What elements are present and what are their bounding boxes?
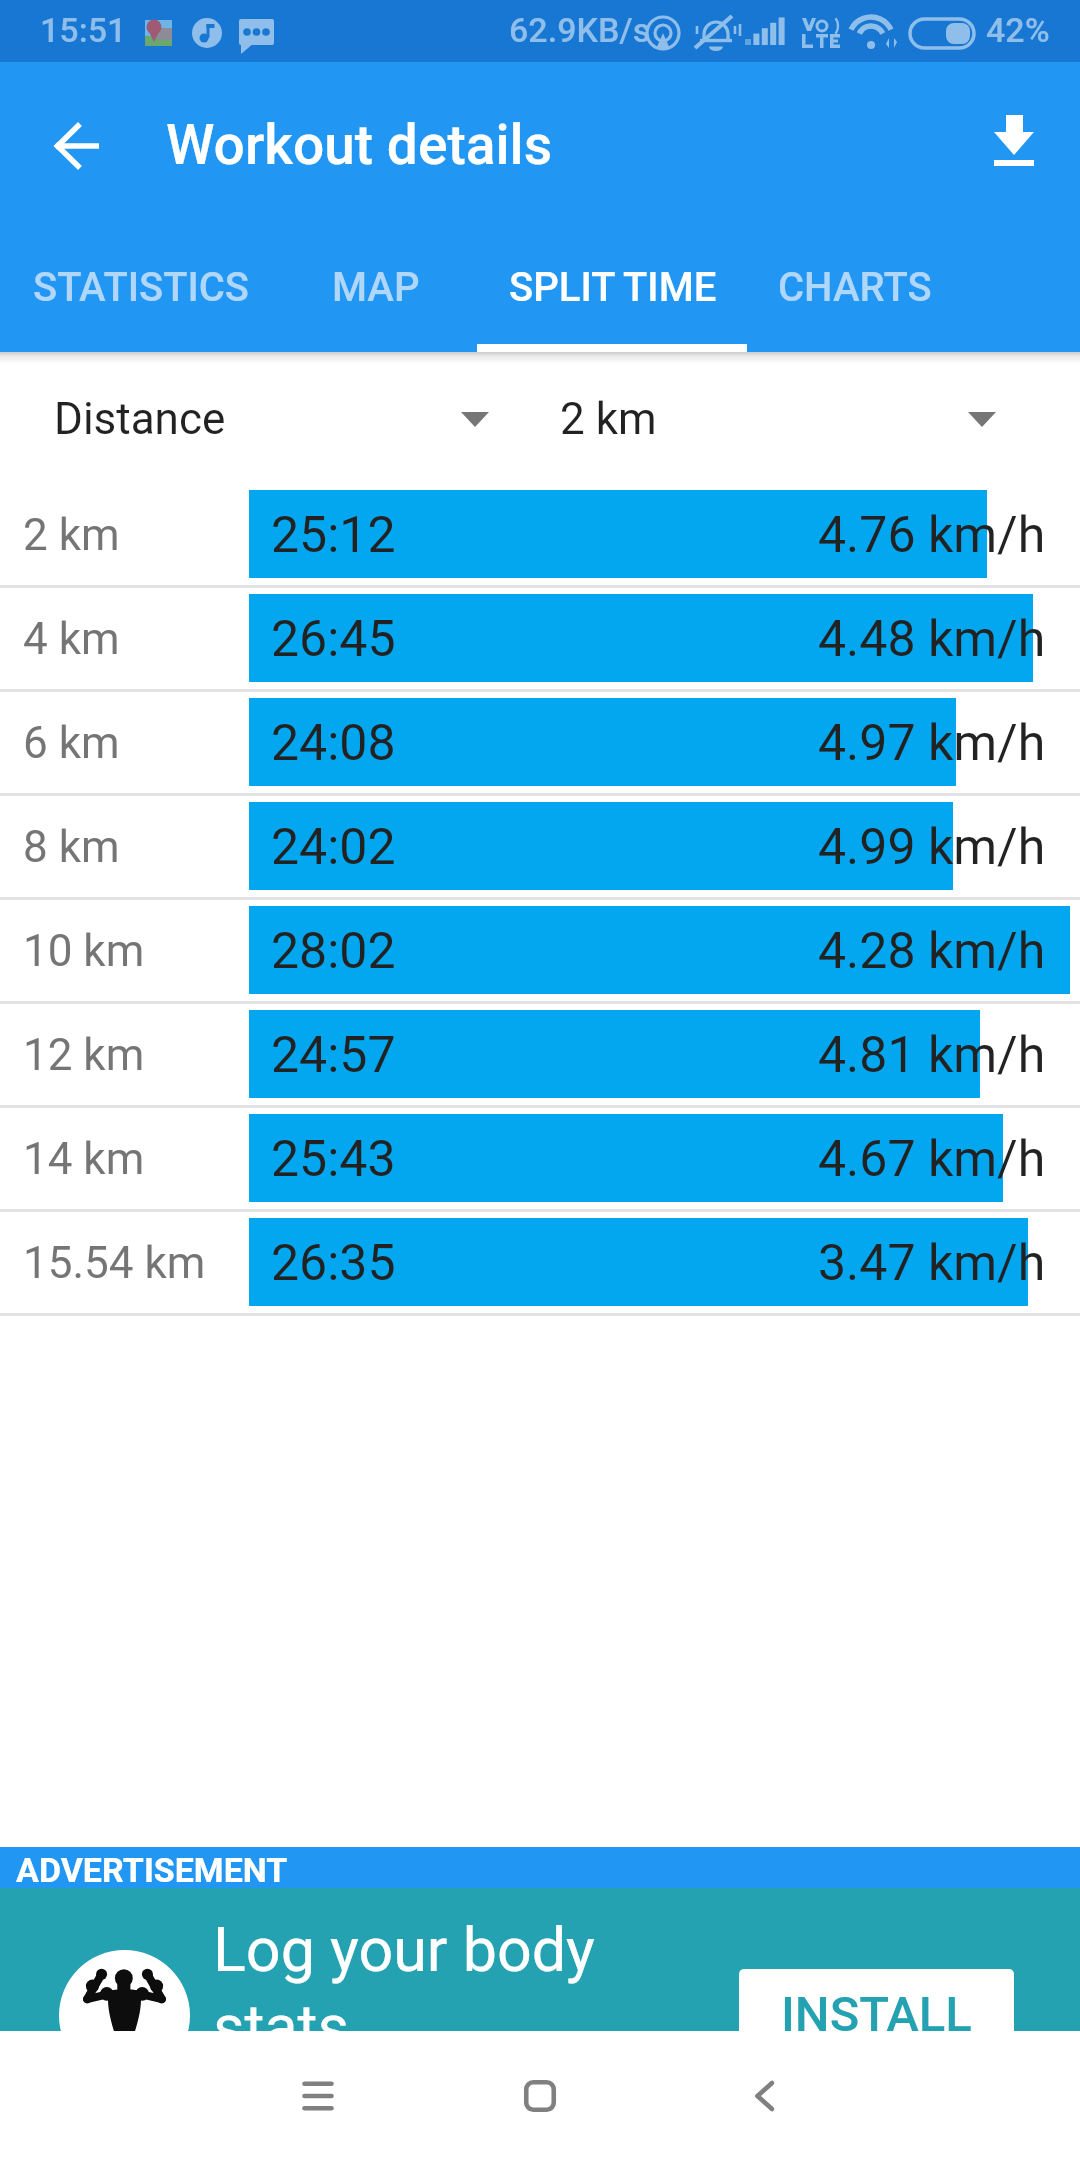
staticText: MAP <box>332 264 420 311</box>
staticText: 24:08 <box>271 714 396 773</box>
staticText: 4.97 km/h <box>818 714 1046 773</box>
staticText: 26:35 <box>271 1234 396 1293</box>
button[interactable]: 2 km <box>0 480 1080 584</box>
button[interactable]: 4 km <box>0 584 1080 688</box>
button[interactable]: 10 km <box>0 896 1080 1000</box>
staticText: INSTALL <box>781 1986 972 2043</box>
staticText: 12 km <box>23 1029 145 1081</box>
staticText: 25:12 <box>271 506 396 565</box>
staticText: 28:02 <box>271 922 396 981</box>
button[interactable]: 15.54 km <box>0 1208 1080 1312</box>
staticText: 62.9KB/s <box>509 10 651 50</box>
button[interactable]: Log your body stats <box>0 1888 1080 2031</box>
staticText: 4 km <box>23 613 120 665</box>
button[interactable]: STATISTICS <box>2 230 279 352</box>
button[interactable]: Home <box>482 2038 598 2154</box>
staticText: 25:43 <box>271 1130 396 1189</box>
staticText: Log your body stats <box>213 1914 595 2057</box>
staticText: Distance <box>54 393 226 445</box>
staticText: 14 km <box>23 1133 145 1185</box>
staticText: 42% <box>986 10 1050 50</box>
button[interactable]: 12 km <box>0 1000 1080 1104</box>
staticText: SPLIT TIME <box>509 264 717 311</box>
staticText: 4.99 km/h <box>818 818 1046 877</box>
staticText: ADVERTISEMENT <box>16 1850 288 1890</box>
button[interactable]: 8 km <box>0 792 1080 896</box>
staticText: STATISTICS <box>33 264 249 311</box>
staticText: CHARTS <box>778 264 932 311</box>
staticText: 4.81 km/h <box>818 1026 1046 1085</box>
staticText: 26:45 <box>271 610 396 669</box>
staticText: 15:51 <box>40 10 127 50</box>
staticText: Workout details <box>166 113 553 177</box>
button[interactable]: CHARTS <box>750 230 960 352</box>
staticText: 2 km <box>560 393 657 445</box>
staticText: 24:02 <box>271 818 396 877</box>
staticText: 4.76 km/h <box>818 506 1046 565</box>
staticText: 15.54 km <box>23 1237 206 1289</box>
staticText: 4.67 km/h <box>818 1130 1046 1189</box>
button[interactable]: 2 km <box>520 352 1080 480</box>
button[interactable]: SPLIT TIME <box>478 230 748 352</box>
staticText: 6 km <box>23 717 120 769</box>
button[interactable]: MAP <box>305 230 447 352</box>
button[interactable]: Download <box>959 86 1069 196</box>
staticText: 8 km <box>23 821 120 873</box>
staticText: 3.47 km/h <box>818 1234 1046 1293</box>
staticText: 2 km <box>23 509 120 561</box>
button[interactable]: Back <box>707 2038 823 2154</box>
button[interactable]: Back <box>22 91 132 201</box>
staticText: 10 km <box>23 925 145 977</box>
button[interactable]: Menu <box>260 2038 376 2154</box>
button[interactable]: INSTALL <box>739 1969 1014 2069</box>
staticText: 4.48 km/h <box>818 610 1046 669</box>
staticText: 4.28 km/h <box>818 922 1046 981</box>
button[interactable]: 6 km <box>0 688 1080 792</box>
button[interactable]: 14 km <box>0 1104 1080 1208</box>
staticText: 24:57 <box>271 1026 396 1085</box>
button[interactable]: Distance <box>0 352 520 480</box>
